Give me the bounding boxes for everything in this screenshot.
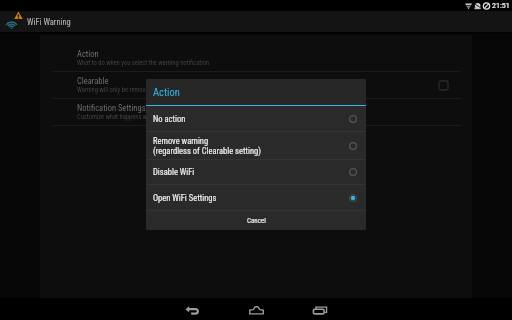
staticText: Customize what happens when notified: [77, 113, 178, 121]
button[interactable]: WiFi Warning: [0, 11, 512, 32]
staticText: Warning will only be removable by action: [77, 86, 181, 94]
staticText: Remove warning: [153, 136, 209, 146]
button[interactable]: Clearable: [40, 72, 472, 98]
button[interactable]: Action: [40, 44, 472, 71]
staticText: 21:51: [492, 1, 510, 10]
staticText: Notification Settings: [77, 103, 146, 113]
staticText: Cancel: [247, 217, 266, 225]
button[interactable]: Recents: [295, 300, 345, 320]
staticText: (regardless of Clearable setting): [153, 146, 261, 156]
button[interactable]: Home: [231, 300, 281, 320]
staticText: No action: [153, 114, 186, 124]
staticText: Disable WiFi: [153, 167, 195, 177]
staticText: Action: [77, 49, 99, 59]
staticText: WiFi Warning: [27, 17, 71, 27]
staticText: Clearable: [77, 76, 109, 86]
button[interactable]: Open WiFi Settings: [146, 185, 366, 210]
button[interactable]: Remove warning: [146, 132, 366, 159]
button[interactable]: Back: [167, 300, 217, 320]
button[interactable]: No action: [146, 106, 366, 131]
staticText: Action: [153, 86, 180, 98]
button[interactable]: Cancel: [146, 211, 366, 230]
staticText: What to do when you select the warning n…: [77, 59, 210, 67]
button[interactable]: Notification Settings: [40, 99, 472, 125]
staticText: Open WiFi Settings: [153, 193, 217, 203]
button[interactable]: Disable WiFi: [146, 160, 366, 184]
